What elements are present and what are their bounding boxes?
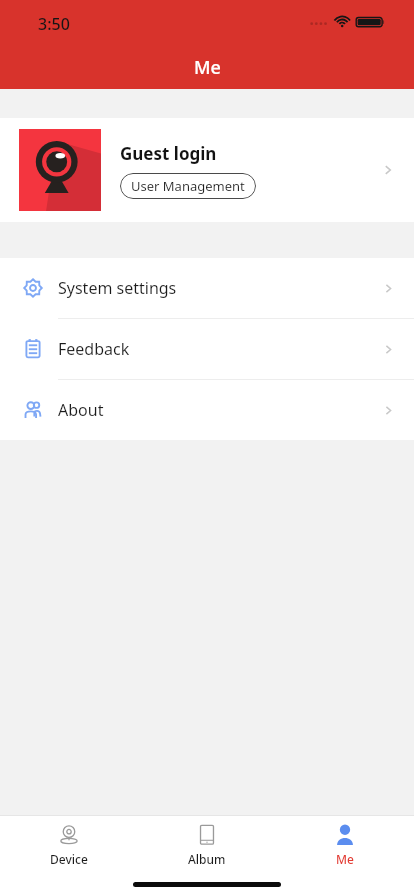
button[interactable]: Device <box>0 817 138 873</box>
staticText: User Management <box>131 177 245 195</box>
button[interactable]: User Management <box>120 173 256 199</box>
button[interactable]: Guest login <box>0 118 414 222</box>
staticText: Guest login <box>120 142 217 165</box>
button[interactable]: Me <box>276 817 414 873</box>
button[interactable]: Feedback <box>0 319 414 379</box>
staticText: Device <box>50 851 88 867</box>
staticText: System settings <box>58 277 381 299</box>
staticText: About <box>58 399 381 421</box>
staticText: Album <box>188 851 226 867</box>
button[interactable]: About <box>0 380 414 440</box>
staticText: Me <box>194 55 221 80</box>
staticText: Me <box>336 851 354 867</box>
staticText: 3:50 <box>38 13 70 35</box>
button[interactable]: Album <box>138 817 276 873</box>
button[interactable]: System settings <box>0 258 414 318</box>
staticText: Feedback <box>58 338 381 360</box>
